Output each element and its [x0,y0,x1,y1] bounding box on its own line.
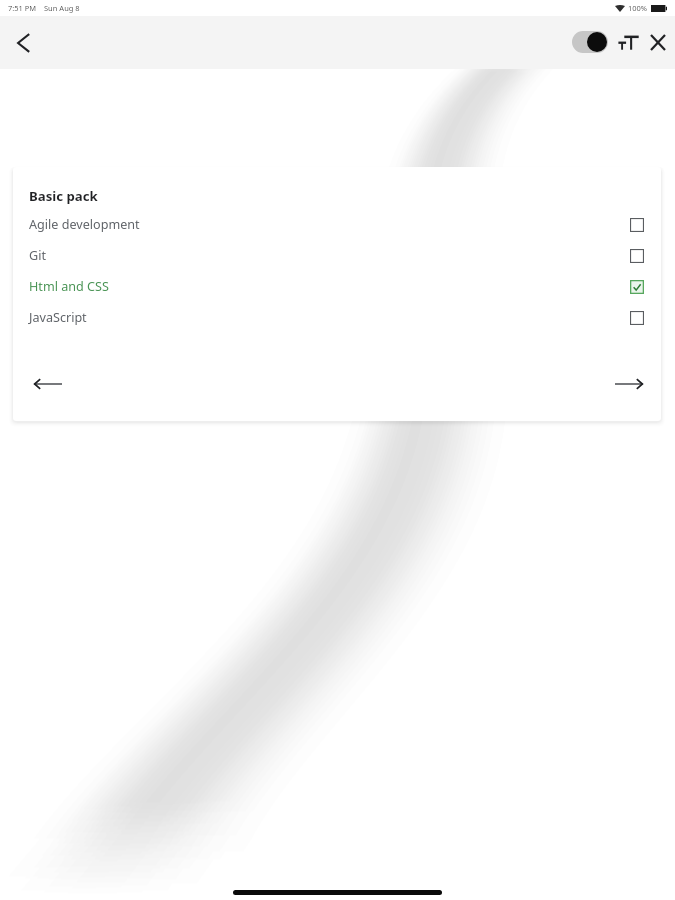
button[interactable]: Next [613,371,645,397]
staticText: Agile development [29,216,140,233]
button[interactable]: Toggle dark mode [568,28,611,57]
button[interactable]: Text size [613,29,645,56]
staticText: Html and CSS [29,278,109,295]
staticText: JavaScript [29,309,87,326]
staticText: Sun Aug 8 [44,3,80,13]
button[interactable]: Html and CSS [29,271,644,302]
button[interactable]: Previous [32,371,64,397]
button[interactable]: JavaScript [29,302,644,333]
staticText: Git [29,247,46,264]
staticText: Basic pack [29,187,98,205]
staticText: 7:51 PM [8,3,37,13]
button[interactable]: Git [29,240,644,271]
button[interactable]: Agile development [29,209,644,240]
staticText: 100% [628,3,648,13]
button[interactable]: Back [2,27,42,59]
button[interactable]: Close [645,29,675,56]
